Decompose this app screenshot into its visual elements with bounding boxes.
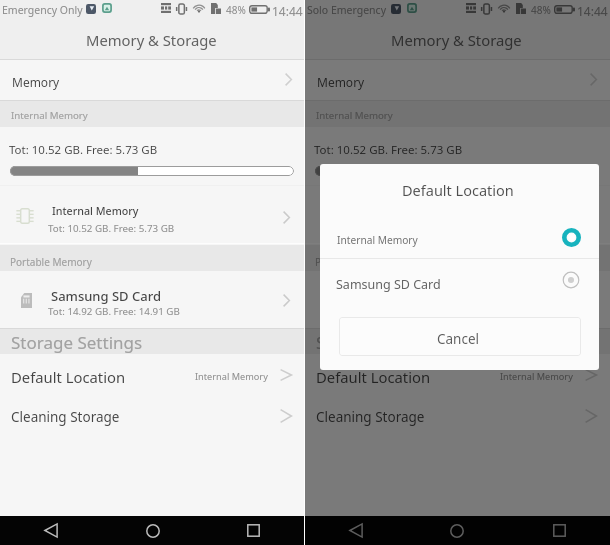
staticText: Memory & Storage <box>391 30 522 50</box>
button[interactable] <box>0 60 304 100</box>
staticText: Internal Memory <box>316 109 393 122</box>
staticText: Samsung SD Card <box>336 276 441 293</box>
staticText: Portable Memory <box>315 255 397 269</box>
button[interactable] <box>320 214 599 258</box>
button[interactable] <box>305 398 610 438</box>
staticText: Cleaning Storage <box>11 408 120 426</box>
staticText: Internal Memory <box>11 109 88 122</box>
staticText: Internal Memory <box>52 204 139 219</box>
staticText: Samsung SD Card <box>356 287 466 305</box>
staticText: 14:44 <box>272 3 303 19</box>
staticText: Tot: 14.92 GB. Free: 14.91 GB <box>48 305 180 318</box>
staticText: 14:44 <box>577 3 608 19</box>
button[interactable]: Recent apps <box>508 516 610 545</box>
staticText: Memory & Storage <box>86 30 217 50</box>
staticText: Default Location <box>402 180 514 200</box>
button[interactable] <box>0 190 304 244</box>
staticText: Internal Memory <box>500 370 573 383</box>
staticText: 48% <box>531 3 551 17</box>
staticText: Memory <box>317 74 365 90</box>
button[interactable]: Cancel <box>339 317 581 356</box>
staticText: Internal Memory <box>195 370 268 383</box>
button[interactable]: Back <box>0 516 102 545</box>
staticText: Storage Settings <box>11 331 143 354</box>
staticText: Cancel <box>437 330 480 348</box>
button[interactable]: Recent apps <box>203 516 304 545</box>
staticText: Portable Memory <box>10 255 92 269</box>
staticText: Tot: 10.52 GB. Free: 5.73 GB <box>9 142 158 158</box>
staticText: Memory <box>12 74 60 90</box>
staticText: Solo Emergency <box>307 3 386 17</box>
staticText: 48% <box>226 3 246 17</box>
button[interactable] <box>320 259 599 303</box>
staticText: Emergency Only <box>2 3 83 17</box>
button[interactable] <box>305 60 610 100</box>
button[interactable] <box>305 271 610 328</box>
staticText: Tot: 10.52 GB. Free: 5.73 GB <box>314 142 463 158</box>
button[interactable] <box>0 354 304 398</box>
staticText: Tot: 10.52 GB. Free: 5.73 GB <box>48 222 175 235</box>
staticText: Storage Settings <box>316 331 448 354</box>
button[interactable]: Home <box>406 516 508 545</box>
button[interactable] <box>0 271 304 328</box>
staticText: Internal Memory <box>337 233 418 247</box>
button[interactable]: Home <box>102 516 203 545</box>
staticText: Default Location <box>316 367 431 387</box>
staticText: Tot: 14.92 GB. Free: 14.91 GB <box>353 305 485 318</box>
staticText: Samsung SD Card <box>51 287 161 305</box>
button[interactable] <box>0 398 304 438</box>
staticText: Default Location <box>11 367 126 387</box>
button[interactable] <box>305 190 610 244</box>
button[interactable]: Back <box>305 516 406 545</box>
button[interactable] <box>305 354 610 398</box>
staticText: Cleaning Storage <box>316 408 425 426</box>
